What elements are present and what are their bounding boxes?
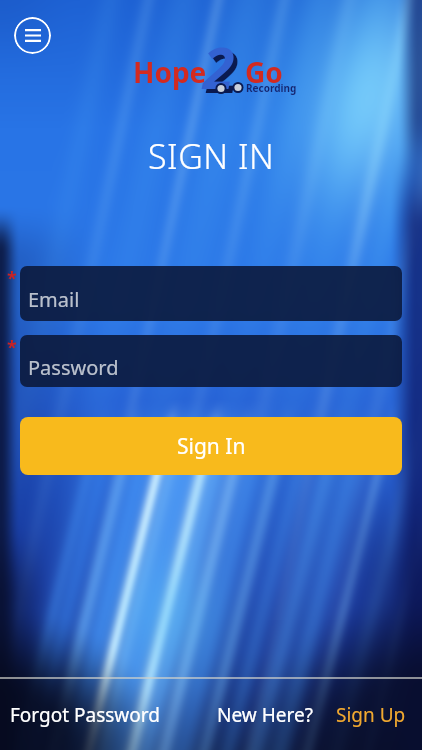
button[interactable]: Forgot Password bbox=[10, 702, 160, 728]
staticText: SIGN IN bbox=[148, 133, 275, 179]
staticText: Email bbox=[28, 286, 80, 313]
staticText: New Here? bbox=[217, 702, 313, 728]
button[interactable] bbox=[14, 17, 51, 54]
button[interactable]: Email bbox=[20, 266, 402, 321]
staticText: * bbox=[7, 266, 17, 291]
button[interactable]: Password bbox=[20, 335, 402, 387]
staticText: Hope bbox=[133, 53, 207, 91]
button[interactable]: Sign Up bbox=[336, 702, 406, 728]
staticText: Recording bbox=[246, 81, 297, 95]
button[interactable]: Sign In bbox=[20, 417, 402, 475]
staticText: 2 bbox=[207, 32, 239, 110]
staticText: * bbox=[7, 335, 17, 360]
staticText: 2 bbox=[203, 28, 235, 106]
staticText: Password bbox=[28, 354, 119, 381]
staticText: Go bbox=[245, 53, 283, 91]
staticText: Sign In bbox=[177, 432, 246, 461]
